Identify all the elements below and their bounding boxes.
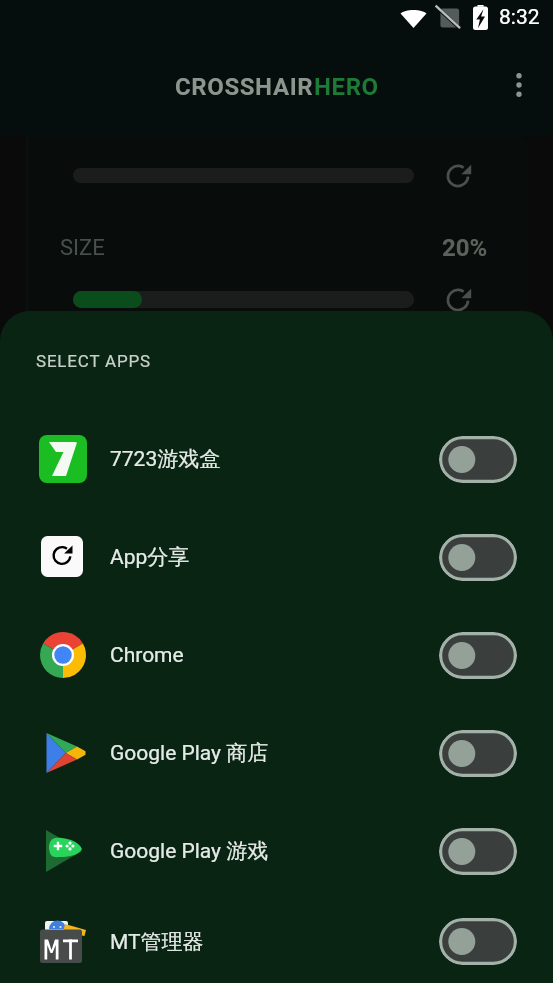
button[interactable]: Toggle app (439, 534, 517, 581)
staticText: 8:32 (499, 5, 540, 30)
button[interactable]: Google Play 商店 (0, 704, 553, 802)
button[interactable]: Reset size (444, 286, 472, 314)
button[interactable]: Chrome (0, 606, 553, 704)
button[interactable]: 7723游戏盒 (0, 410, 553, 508)
staticText: Google Play 商店 (110, 740, 269, 766)
button[interactable]: App分享 (0, 508, 553, 606)
button[interactable]: Google Play 游戏 (0, 802, 553, 900)
staticText: SIZE (60, 235, 105, 261)
staticText: HERO (314, 73, 379, 101)
staticText: CROSSHAIR (175, 73, 314, 101)
button[interactable]: Toggle app (439, 436, 517, 483)
staticText: Chrome (110, 643, 184, 668)
staticText: MT管理器 (110, 929, 204, 955)
staticText: 7723游戏盒 (110, 446, 221, 472)
staticText: SELECT APPS (36, 351, 151, 371)
button[interactable]: MT管理器 (0, 900, 553, 983)
button[interactable]: Reset thickness (444, 162, 472, 190)
staticText: Google Play 游戏 (110, 838, 269, 864)
button[interactable]: Toggle app (439, 730, 517, 777)
button[interactable]: Toggle app (439, 828, 517, 875)
staticText: App分享 (110, 544, 190, 570)
button[interactable]: More options (495, 61, 543, 109)
staticText: 20% (442, 234, 488, 262)
button[interactable]: Toggle app (439, 632, 517, 679)
button[interactable]: Toggle app (439, 918, 517, 965)
